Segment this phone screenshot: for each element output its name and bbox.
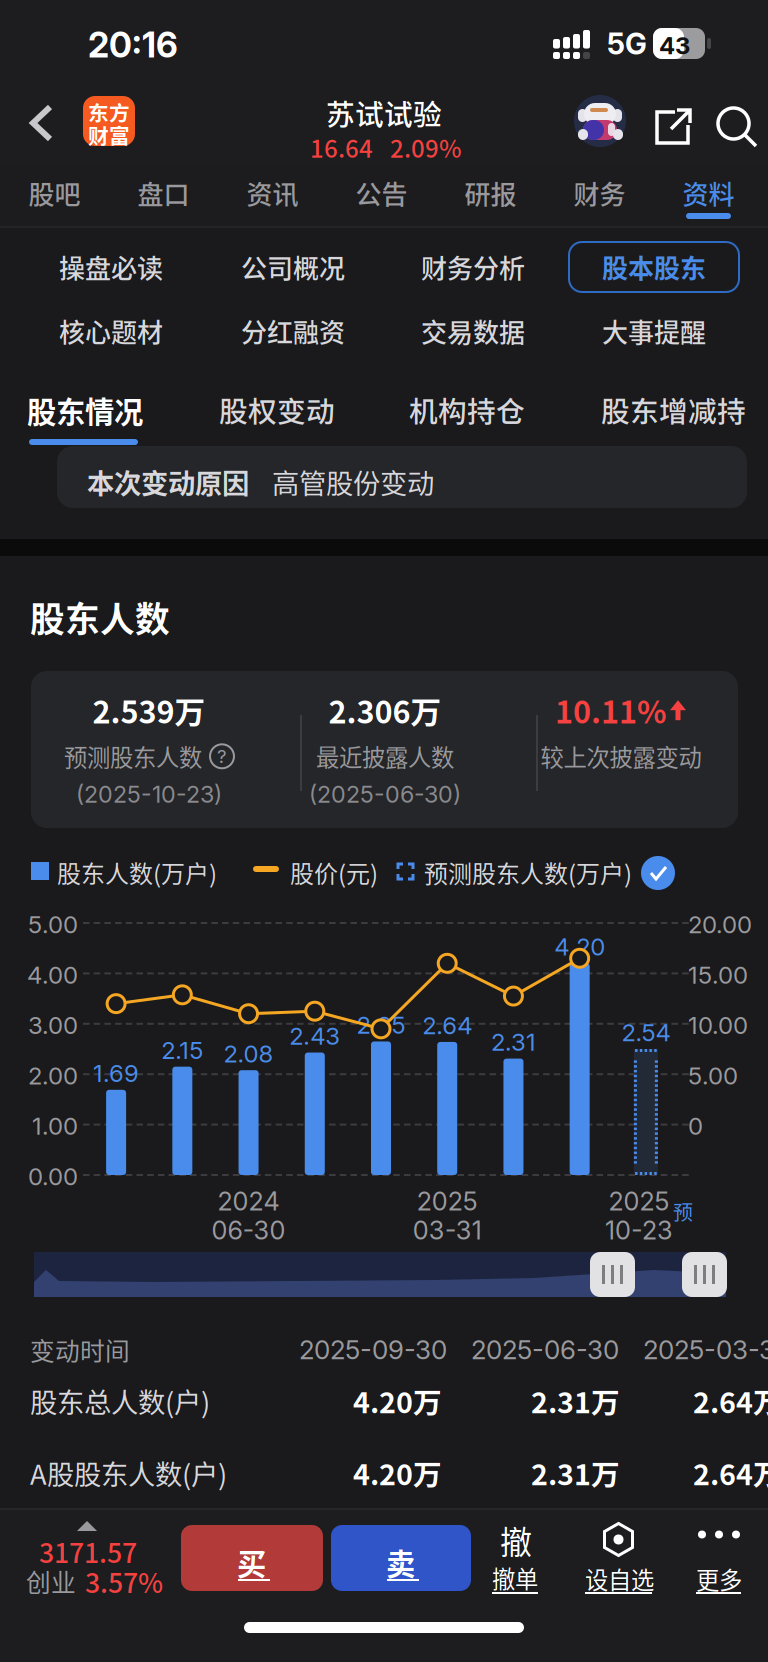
staticText: 操盘必读 (59, 248, 163, 286)
button[interactable]: 股东情况 (27, 389, 156, 451)
staticText: 2.64万 (693, 1452, 768, 1493)
staticText: 股东情况 (27, 389, 143, 431)
button[interactable]: 资讯 (218, 163, 327, 226)
staticText: 3.00 (28, 1011, 78, 1040)
staticText: 设自选 (585, 1562, 654, 1596)
staticText: 创业 (26, 1563, 76, 1599)
staticText: 2.64万 (693, 1380, 768, 1421)
staticText: 20.00 (688, 910, 752, 939)
staticText: 2025 (608, 1186, 669, 1217)
staticText: 股本股东 (602, 248, 706, 286)
button[interactable]: 分享 (645, 99, 701, 155)
staticText: 2025-09-30 (299, 1334, 447, 1365)
button[interactable]: 核心题材 (26, 306, 196, 356)
button[interactable]: 设自选 (585, 1521, 653, 1593)
button[interactable]: 机构持仓 (409, 389, 538, 451)
button[interactable]: 财务 (545, 163, 654, 226)
button[interactable]: 资料 (654, 163, 763, 226)
staticText: 2.15 (161, 1036, 203, 1065)
staticText: 5.00 (688, 1061, 738, 1090)
button[interactable]: 交易数据 (388, 306, 558, 356)
button[interactable]: 调整时间范围 (590, 1252, 635, 1297)
staticText: 卖 (386, 1541, 415, 1583)
button[interactable]: 公司概况 (208, 242, 378, 292)
staticText: 2.64 (422, 1011, 472, 1040)
staticText: 16.64 (310, 130, 373, 165)
staticText: 2.54 (621, 1018, 670, 1047)
staticText: 股东总人数(户) (30, 1381, 210, 1421)
staticText: 大事提醒 (602, 312, 706, 350)
staticText: 5.00 (28, 910, 78, 939)
button[interactable]: 调整时间范围 (682, 1252, 727, 1297)
staticText: A股股东人数(户) (30, 1453, 227, 1493)
button[interactable]: 本次变动原因 (57, 446, 747, 508)
staticText: 2.31 (491, 1028, 536, 1057)
staticText: 0.00 (28, 1162, 78, 1191)
staticText: 10-23 (605, 1215, 673, 1246)
staticText: 股东增减持 (601, 389, 746, 430)
staticText: 股东人数 (30, 592, 170, 642)
button[interactable]: 撤 (492, 1517, 550, 1593)
button[interactable]: 盘口 (109, 163, 218, 226)
staticText: 核心题材 (59, 312, 163, 350)
staticText: 4.20 (554, 932, 605, 961)
staticText: 财务 (573, 174, 625, 212)
staticText: 2.31万 (531, 1452, 620, 1493)
button[interactable]: 股本股东 (569, 242, 739, 292)
button[interactable]: 操盘必读 (26, 242, 196, 292)
staticText: 20:16 (88, 24, 178, 66)
staticText: 2.09% (390, 130, 462, 165)
button[interactable]: 大事提醒 (569, 306, 739, 356)
button[interactable]: 买 (181, 1525, 323, 1591)
staticText: 06-30 (212, 1215, 286, 1246)
staticText: 预测股东人数(万户) (424, 855, 632, 890)
button[interactable]: 切换预测显示 (641, 856, 675, 890)
button[interactable]: AI 助手 (574, 95, 626, 147)
button[interactable]: 卖 (331, 1525, 471, 1591)
staticText: 2.539万 (92, 688, 205, 732)
staticText: 机构持仓 (409, 389, 525, 430)
staticText: 东方 (88, 97, 130, 127)
staticText: 买 (237, 1541, 266, 1583)
button[interactable]: 东方财富 (83, 96, 135, 146)
staticText: 资料 (682, 174, 734, 212)
staticText: 2.08 (224, 1039, 274, 1068)
button[interactable]: 分红融资 (208, 306, 378, 356)
staticText: 预测股东人数 (64, 739, 202, 773)
staticText: 交易数据 (421, 312, 525, 350)
button[interactable]: 公告 (327, 163, 436, 226)
button[interactable]: 研报 (436, 163, 545, 226)
staticText: 股权变动 (219, 389, 335, 430)
staticText: 1.69 (93, 1059, 139, 1088)
staticText: 撤 (500, 1517, 532, 1563)
button[interactable]: 股东增减持 (601, 389, 757, 451)
staticText: 2.306万 (328, 688, 441, 732)
staticText: 分红融资 (241, 312, 345, 350)
staticText: 2.43 (289, 1021, 340, 1050)
staticText: 更多 (696, 1562, 742, 1596)
staticText: 研报 (464, 174, 516, 212)
staticText: 股价(元) (290, 855, 378, 890)
staticText: 4.20万 (353, 1452, 442, 1493)
staticText: 公司概况 (241, 248, 345, 286)
staticText: 2.31万 (531, 1380, 620, 1421)
staticText: 2025-06-30 (471, 1334, 619, 1365)
button[interactable]: 财务分析 (388, 242, 558, 292)
button[interactable]: 搜索 (709, 99, 765, 155)
button[interactable]: 返回 (12, 88, 72, 158)
staticText: 公告 (355, 174, 407, 212)
staticText: (2025-10-23) (76, 780, 222, 808)
staticText: 2024 (218, 1186, 280, 1217)
staticText: 股东人数(万户) (57, 855, 217, 890)
staticText: 变动时间 (30, 1332, 130, 1368)
staticText: 1.00 (32, 1112, 78, 1141)
staticText: 2.65 (356, 1010, 405, 1039)
staticText: 03-31 (413, 1215, 482, 1246)
staticText: 资讯 (246, 174, 298, 212)
staticText: 5G (607, 26, 647, 61)
button[interactable]: 股权变动 (219, 389, 348, 451)
button[interactable]: 更多 (696, 1530, 742, 1592)
button[interactable]: 股吧 (0, 163, 109, 226)
staticText: 苏试试验 (326, 92, 442, 133)
staticText: 10.00 (688, 1011, 748, 1040)
